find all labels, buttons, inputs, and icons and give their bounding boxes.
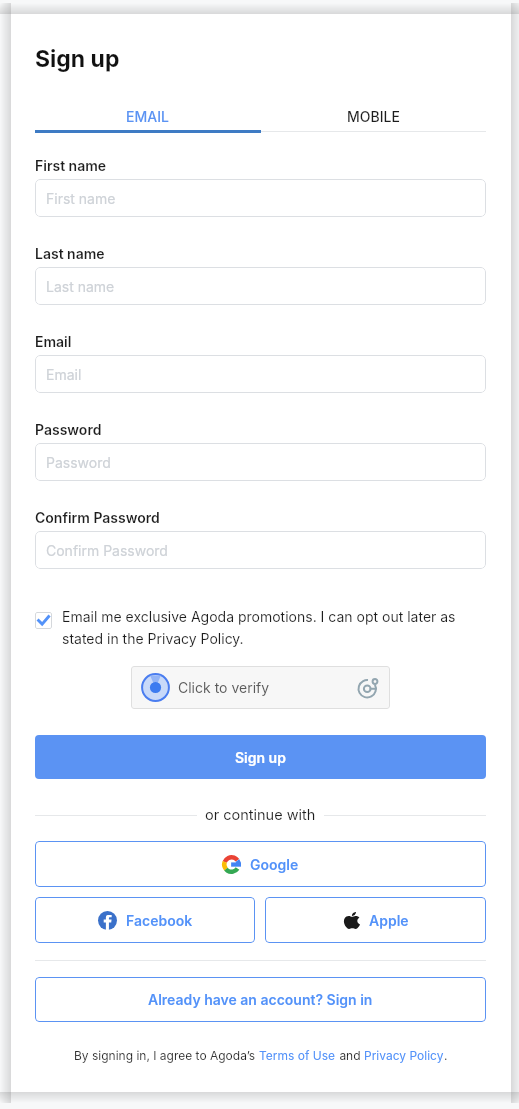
- staticText: Already have an account? Sign in: [148, 991, 373, 1008]
- button[interactable]: Already have an account? Sign in: [35, 977, 486, 1022]
- staticText: Click to verify: [178, 679, 270, 696]
- button[interactable]: First name: [35, 179, 486, 217]
- button[interactable]: Apple: [265, 897, 486, 943]
- button[interactable]: Privacy Policy: [364, 1048, 444, 1063]
- other: Refresh captcha: [358, 677, 379, 698]
- button[interactable]: EMAIL: [35, 101, 260, 131]
- staticText: Apple: [369, 912, 409, 929]
- button[interactable]: Last name: [35, 267, 486, 305]
- staticText: Confirm Password: [35, 509, 160, 526]
- staticText: Last name: [46, 278, 115, 295]
- staticText: Password: [46, 454, 111, 471]
- button[interactable]: Password: [35, 443, 486, 481]
- staticText: First name: [46, 190, 116, 207]
- button[interactable]: Facebook: [35, 897, 255, 943]
- staticText: Email: [35, 333, 72, 350]
- staticText: and: [336, 1048, 364, 1063]
- button[interactable]: Email: [35, 355, 486, 393]
- button[interactable]: Email me exclusive Agoda promotions. I c…: [35, 608, 486, 647]
- staticText: First name: [35, 157, 107, 174]
- staticText: Email: [46, 366, 82, 383]
- staticText: Sign up: [35, 45, 120, 73]
- button[interactable]: Sign up: [35, 735, 486, 779]
- staticText: Sign up: [235, 749, 286, 766]
- staticText: .: [444, 1048, 448, 1063]
- button[interactable]: Click to verify: [131, 666, 390, 709]
- button[interactable]: Confirm Password: [35, 531, 486, 569]
- staticText: Last name: [35, 245, 105, 262]
- staticText: By signing in, I agree to Agoda’s: [74, 1048, 259, 1063]
- staticText: or continue with: [205, 806, 316, 824]
- staticText: Password: [35, 421, 102, 438]
- button[interactable]: Terms of Use: [259, 1048, 336, 1063]
- staticText: EMAIL: [126, 108, 169, 125]
- staticText: Email me exclusive Agoda promotions. I c…: [62, 608, 486, 647]
- staticText: MOBILE: [347, 108, 400, 125]
- staticText: Facebook: [126, 912, 193, 929]
- staticText: Google: [250, 856, 299, 873]
- button[interactable]: MOBILE: [260, 101, 486, 131]
- button[interactable]: Google: [35, 841, 486, 887]
- staticText: Confirm Password: [46, 542, 168, 559]
